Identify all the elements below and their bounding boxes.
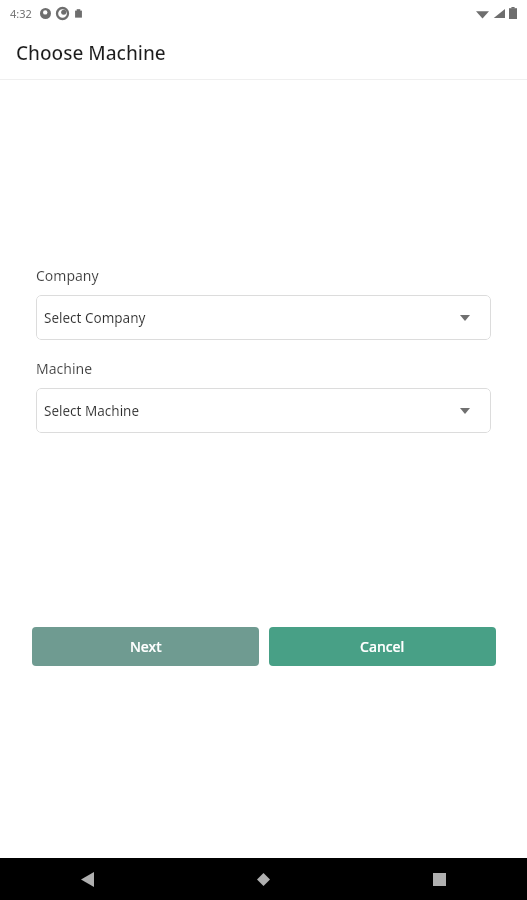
staticText: Cancel — [360, 637, 405, 656]
staticText: Next — [130, 637, 162, 656]
button[interactable]: Cancel — [269, 627, 496, 666]
button[interactable]: Select Machine dropdown — [36, 388, 491, 433]
button[interactable]: Recent apps — [351, 858, 527, 900]
staticText: Machine — [36, 359, 93, 378]
button[interactable]: Back — [0, 858, 175, 900]
staticText: Company — [36, 266, 99, 285]
button[interactable]: Next — [32, 627, 259, 666]
button[interactable]: Home — [175, 858, 351, 900]
staticText: Choose Machine — [16, 40, 166, 66]
staticText: Select Machine — [44, 402, 460, 420]
staticText: Select Company — [44, 309, 460, 327]
button[interactable]: Select Company dropdown — [36, 295, 491, 340]
staticText: 4:32 — [10, 6, 32, 21]
